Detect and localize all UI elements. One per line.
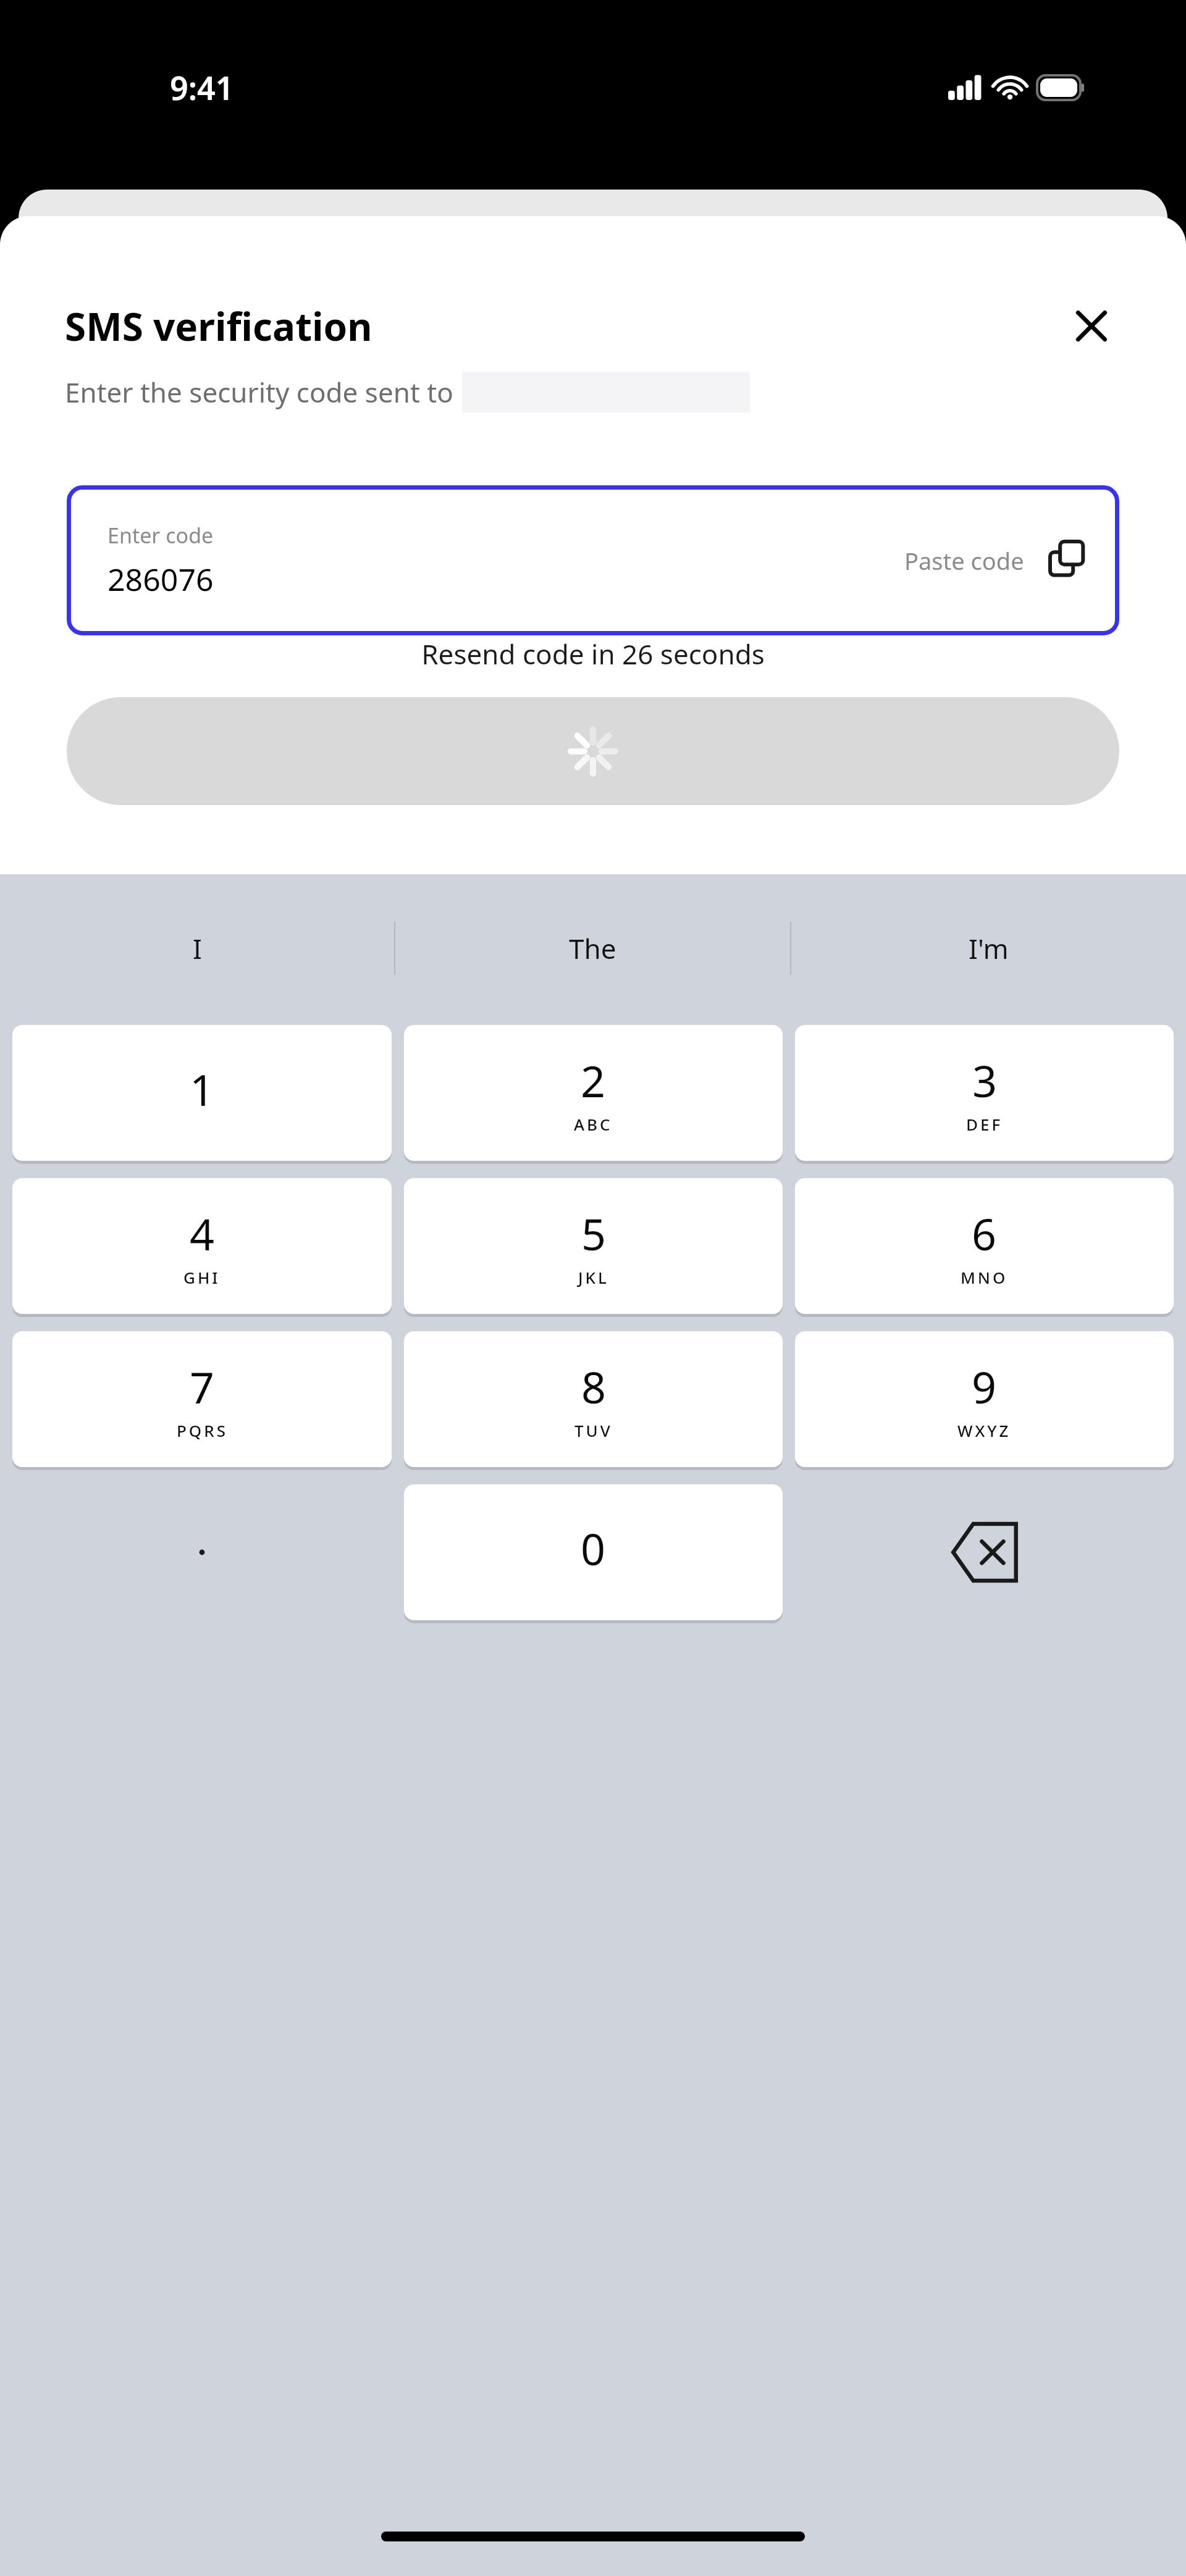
button[interactable]: 6 [795, 1178, 1174, 1314]
staticText: 9 [972, 1357, 997, 1416]
staticText: 0 [581, 1519, 606, 1578]
button[interactable]: I'm [791, 916, 1186, 981]
button[interactable]: Paste code [904, 542, 1088, 580]
staticText: MNO [961, 1266, 1008, 1288]
staticText: Paste code [904, 545, 1024, 577]
staticText: 7 [190, 1357, 215, 1416]
button[interactable]: 9 [795, 1331, 1174, 1467]
staticText: ABC [574, 1113, 613, 1135]
button[interactable]: 0 [404, 1484, 783, 1620]
button[interactable]: Close [1062, 296, 1121, 356]
staticText: TUV [574, 1420, 613, 1441]
staticText: 2 [581, 1051, 606, 1110]
button[interactable]: The [395, 916, 790, 981]
staticText: JKL [578, 1266, 609, 1288]
staticText: GHI [183, 1266, 221, 1288]
staticText: Resend code in 26 seconds [0, 635, 1186, 672]
staticText: 3 [972, 1051, 998, 1110]
staticText: SMS verification [65, 300, 372, 352]
button[interactable]: 3 [795, 1025, 1174, 1161]
staticText: 4 [190, 1204, 215, 1263]
staticText: DEF [966, 1113, 1003, 1135]
staticText: 6 [972, 1204, 997, 1263]
button[interactable] [12, 1484, 392, 1620]
staticText: WXYZ [957, 1420, 1011, 1441]
staticText: 1 [190, 1060, 215, 1118]
staticText: Enter the security code sent to [65, 374, 453, 411]
button[interactable]: Backspace [795, 1484, 1174, 1620]
button[interactable]: Loading [67, 697, 1119, 805]
button[interactable]: 5 [404, 1178, 783, 1314]
button[interactable]: Enter code [67, 485, 1119, 635]
button[interactable]: 4 [12, 1178, 392, 1314]
button[interactable]: 7 [12, 1331, 392, 1467]
button[interactable]: I [0, 916, 394, 981]
staticText: The [569, 930, 616, 967]
staticText: 286076 [107, 558, 214, 600]
staticText: I [193, 930, 202, 967]
staticText: PQRS [177, 1420, 228, 1441]
staticText: Enter code [107, 521, 214, 550]
staticText: I'm [969, 930, 1009, 967]
button[interactable]: 8 [404, 1331, 783, 1467]
staticText: 9:41 [170, 65, 234, 109]
button[interactable]: 1 [12, 1025, 392, 1161]
staticText: 8 [581, 1357, 607, 1416]
button[interactable]: 2 [404, 1025, 783, 1161]
staticText: 5 [581, 1204, 607, 1263]
